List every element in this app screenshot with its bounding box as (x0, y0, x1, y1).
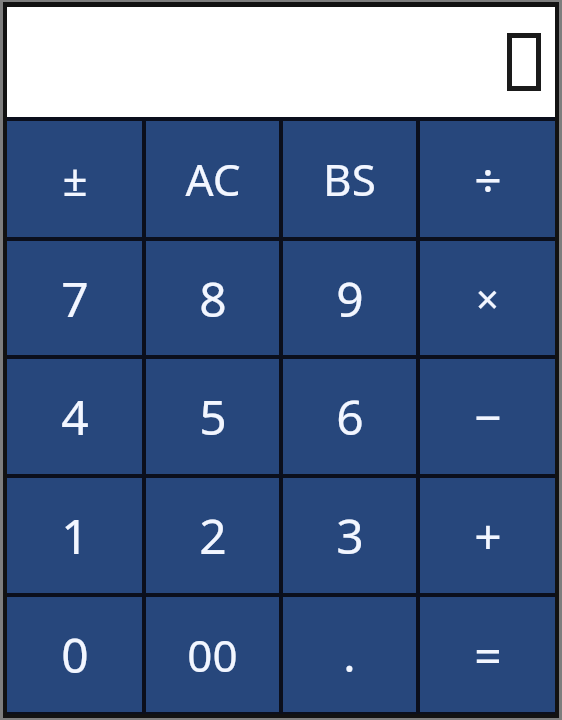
button[interactable]: = (420, 597, 555, 712)
button[interactable]: 6 (283, 359, 416, 474)
button[interactable]: 9 (283, 241, 416, 355)
staticText: 2 (199, 503, 227, 568)
button[interactable]: ± (7, 121, 142, 237)
button[interactable]: AC (146, 121, 279, 237)
staticText: ÷ (474, 147, 502, 212)
staticText: 00 (187, 625, 238, 685)
staticText: ± (62, 149, 88, 209)
button[interactable]: 1 (7, 478, 142, 593)
button[interactable]: − (420, 359, 555, 474)
button[interactable]: 5 (146, 359, 279, 474)
button[interactable]: × (420, 241, 555, 355)
staticText: 9 (336, 266, 364, 331)
button[interactable]: . (283, 597, 416, 712)
button[interactable]: Display value (7, 7, 555, 117)
button[interactable]: 2 (146, 478, 279, 593)
other: Display value (507, 33, 541, 91)
button[interactable]: 3 (283, 478, 416, 593)
button[interactable]: 7 (7, 241, 142, 355)
staticText: 0 (61, 622, 89, 687)
staticText: = (474, 622, 502, 687)
button[interactable]: 8 (146, 241, 279, 355)
staticText: 4 (61, 384, 89, 449)
button[interactable]: 00 (146, 597, 279, 712)
staticText: 3 (336, 503, 364, 568)
button[interactable]: + (420, 478, 555, 593)
staticText: . (343, 623, 356, 686)
staticText: BS (323, 149, 376, 209)
button[interactable]: BS (283, 121, 416, 237)
staticText: − (474, 384, 502, 449)
staticText: 5 (199, 384, 227, 449)
button[interactable]: 0 (7, 597, 142, 712)
staticText: × (476, 271, 499, 325)
staticText: 1 (61, 503, 89, 568)
staticText: 8 (199, 266, 227, 331)
button[interactable]: 4 (7, 359, 142, 474)
staticText: 7 (61, 266, 89, 331)
staticText: AC (185, 149, 241, 209)
button[interactable]: ÷ (420, 121, 555, 237)
staticText: 6 (336, 384, 364, 449)
staticText: + (474, 503, 502, 568)
